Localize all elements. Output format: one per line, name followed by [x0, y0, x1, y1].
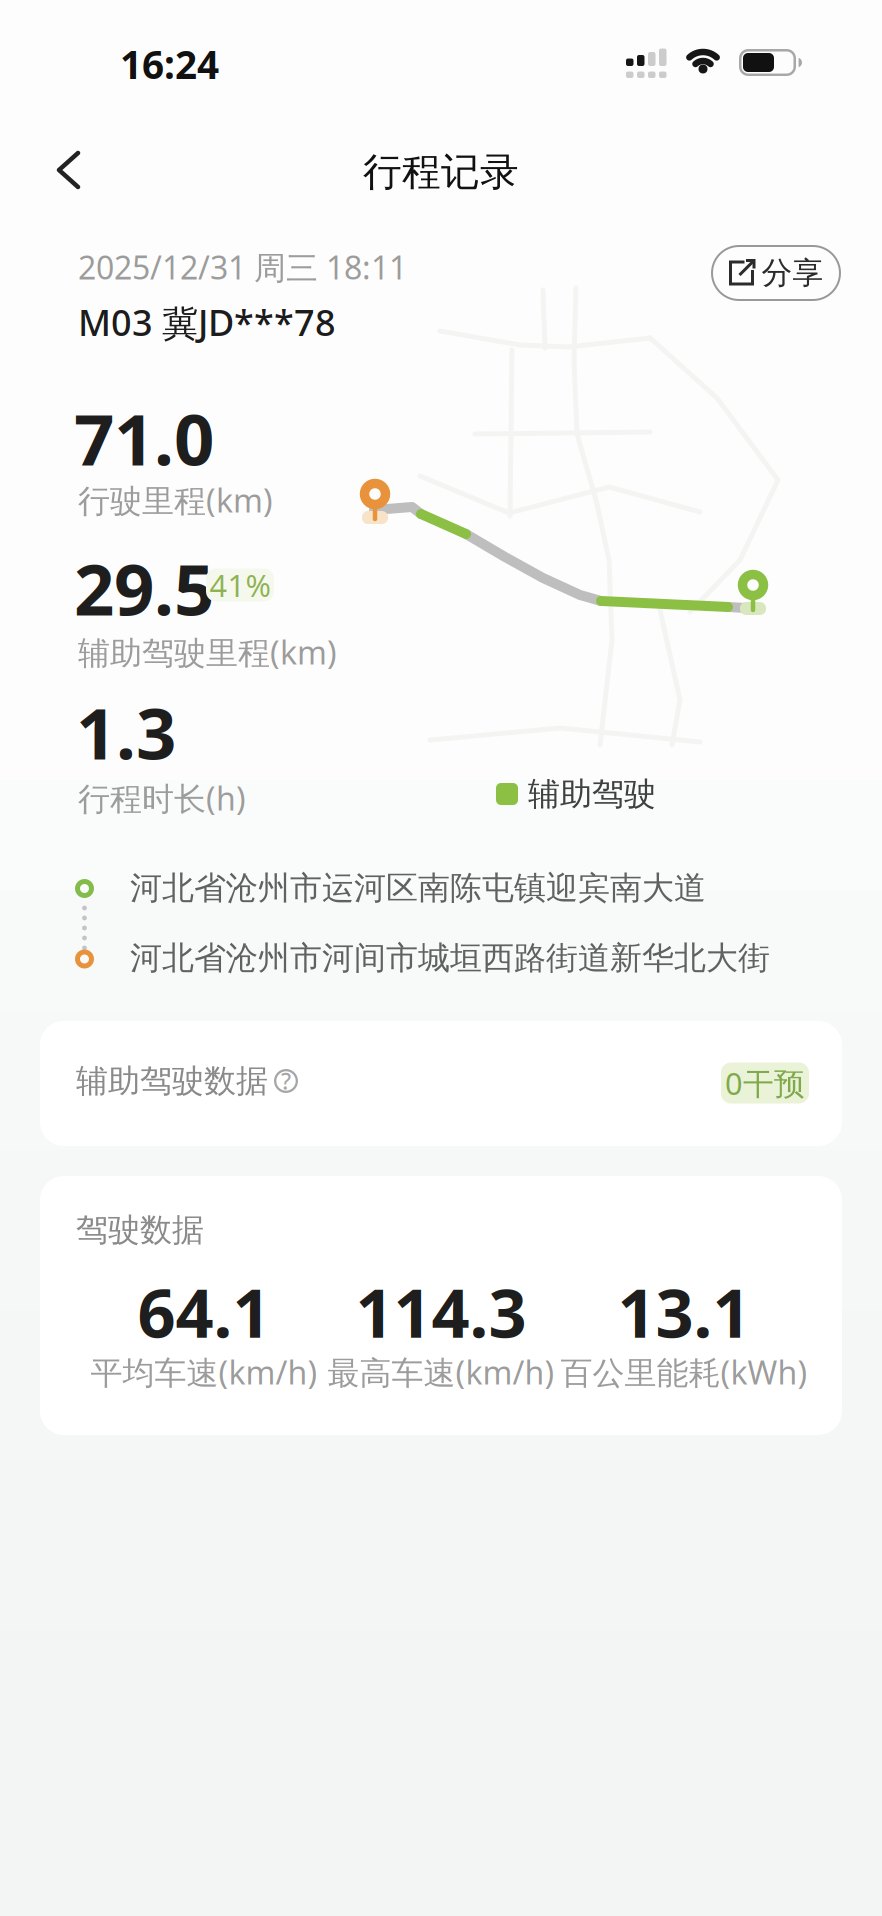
staticText: 64.1 — [137, 1268, 270, 1356]
staticText: 河北省沧州市河间市城垣西路街道新华北大街 — [130, 938, 770, 978]
staticText: 114.3 — [355, 1268, 526, 1356]
staticText: 驾驶数据 — [76, 1210, 204, 1250]
staticText: M03 冀JD***78 — [78, 298, 336, 346]
staticText: 辅助驾驶数据 — [76, 1061, 268, 1101]
staticText: 29.5 — [74, 541, 214, 635]
staticText: 行程时长(h) — [78, 777, 246, 819]
staticText: 41% — [209, 565, 270, 605]
button[interactable]: 分享 — [711, 245, 841, 301]
staticText: 行程记录 — [363, 148, 519, 196]
staticText: 2025/12/31 周三 18:11 — [78, 246, 407, 288]
staticText: 71.0 — [74, 391, 214, 485]
staticText: 辅助驾驶里程(km) — [78, 631, 337, 673]
staticText: 分享 — [761, 254, 823, 292]
staticText: 行驶里程(km) — [78, 479, 273, 521]
staticText: 最高车速(km/h) — [327, 1351, 554, 1393]
staticText: 辅助驾驶 — [528, 774, 656, 814]
staticText: 13.1 — [617, 1268, 750, 1356]
staticText: 0干预 — [725, 1063, 805, 1103]
staticText: 16:24 — [120, 38, 219, 90]
staticText: 平均车速(km/h) — [90, 1351, 317, 1393]
staticText: 1.3 — [76, 685, 176, 779]
staticText: 河北省沧州市运河区南陈屯镇迎宾南大道 — [130, 868, 706, 908]
staticText: 百公里能耗(kWh) — [560, 1351, 807, 1393]
button[interactable]: Back — [42, 137, 95, 203]
button[interactable]: 辅助驾驶数据说明 — [273, 1068, 299, 1094]
staticText: ? — [281, 1066, 291, 1096]
